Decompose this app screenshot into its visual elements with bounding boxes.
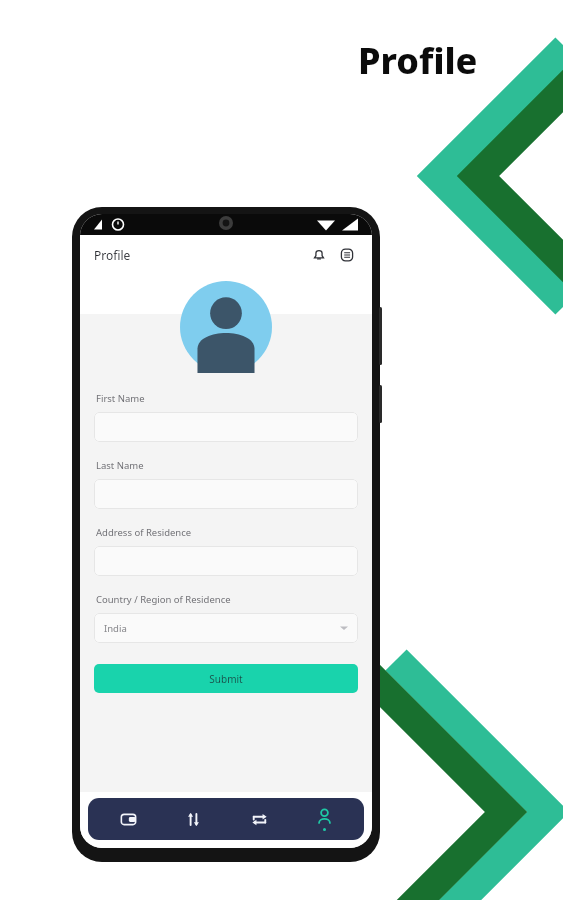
button[interactable]: Transfer [167, 798, 219, 840]
button[interactable]: Menu [336, 244, 358, 266]
button[interactable] [94, 412, 358, 442]
button[interactable]: Notifications [308, 244, 330, 266]
staticText: Profile [358, 36, 478, 85]
button[interactable]: Swap [233, 798, 285, 840]
button[interactable]: Profile [298, 798, 350, 840]
button[interactable]: Wallet [102, 798, 154, 840]
staticText: Submit [209, 672, 243, 686]
staticText: Country / Region of Residence [96, 593, 231, 606]
button[interactable]: India [94, 613, 358, 643]
staticText: Profile [94, 247, 131, 263]
staticText: First Name [96, 392, 145, 405]
staticText: India [104, 622, 127, 635]
button[interactable]: Submit [94, 664, 358, 693]
button[interactable] [94, 479, 358, 509]
button[interactable] [94, 546, 358, 576]
staticText: Address of Residence [96, 526, 192, 539]
staticText: Last Name [96, 459, 144, 472]
